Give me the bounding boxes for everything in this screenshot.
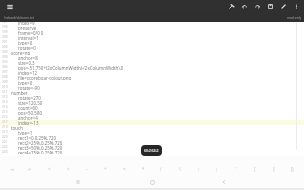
staticText: = xyxy=(123,166,126,172)
staticText: 214 xyxy=(2,105,8,109)
button[interactable]: + xyxy=(98,162,112,176)
staticText: /sdcard/sb/score.txt xyxy=(4,16,34,20)
button[interactable]: Save xyxy=(264,0,277,13)
staticText: 198 xyxy=(2,25,8,29)
staticText: 212 xyxy=(2,95,8,99)
staticText: anchor=4 xyxy=(18,115,38,120)
staticText: touch xyxy=(11,125,23,130)
staticText: type=0 xyxy=(18,80,33,85)
staticText: size=120,50 xyxy=(18,100,43,105)
staticText: * xyxy=(142,166,145,172)
staticText: pos=-51,750+(2xColumnWidth)-(2xColumnWid… xyxy=(18,65,124,70)
staticText: [ xyxy=(254,166,256,172)
staticText: ⇥ xyxy=(10,167,14,172)
staticText: size=0.3 xyxy=(18,60,35,65)
staticText: 218 xyxy=(2,125,8,129)
button[interactable]: () xyxy=(285,162,299,176)
staticText: ' xyxy=(236,166,237,172)
staticText: \ xyxy=(179,166,181,172)
staticText: 207 xyxy=(2,70,8,74)
staticText: 199 xyxy=(2,30,8,34)
button[interactable]: Bookmark xyxy=(225,0,238,13)
staticText: 217 xyxy=(2,120,8,124)
staticText: rotate=0 xyxy=(18,45,36,50)
staticText: 204 xyxy=(2,55,8,59)
staticText: 219 xyxy=(2,130,8,134)
staticText: () xyxy=(291,166,294,172)
staticText: rect2=25%,0,25%,720 xyxy=(18,140,63,145)
staticText: 215 xyxy=(2,110,8,114)
staticText: > xyxy=(67,166,70,172)
button[interactable]: Edit xyxy=(277,0,290,13)
staticText: 201 xyxy=(2,40,8,44)
staticText: - xyxy=(86,166,88,172)
staticText: score=np xyxy=(11,50,31,55)
button[interactable]: Back xyxy=(218,176,230,188)
staticText: 221 xyxy=(2,140,8,144)
staticText: < xyxy=(48,166,51,172)
staticText: : xyxy=(198,166,200,172)
staticText: 223 xyxy=(2,150,8,154)
staticText: count=60 xyxy=(18,105,38,110)
staticText: ; xyxy=(216,166,218,172)
staticText: interval=1 xyxy=(18,35,39,40)
staticText: ] xyxy=(273,166,275,172)
staticText: index=9 xyxy=(18,22,35,25)
button[interactable]: / xyxy=(154,162,168,176)
staticText: preserve xyxy=(18,25,37,30)
staticText: 220 xyxy=(2,135,8,139)
staticText: rotate=270 xyxy=(18,95,41,100)
staticText: 216 xyxy=(2,115,8,119)
staticText: rect3=50%,0,25%,720 xyxy=(18,145,63,150)
button[interactable]: ⇥ xyxy=(5,162,19,176)
staticText: anchor=8 xyxy=(18,55,38,60)
staticText: 60:2 62:2 xyxy=(144,148,159,153)
staticText: rotate=-90 xyxy=(18,85,40,90)
staticText: 202 xyxy=(2,45,8,49)
staticText: index=-13 xyxy=(18,120,39,125)
button[interactable]: [ xyxy=(248,162,262,176)
staticText: 200 xyxy=(2,35,8,39)
staticText: file=scoreboar-colour.png xyxy=(18,75,72,80)
staticText: type=0 xyxy=(18,40,33,45)
staticText: 210 xyxy=(2,85,8,89)
staticText: read-only xyxy=(287,16,302,20)
staticText: 208 xyxy=(2,75,8,79)
staticText: 197 xyxy=(2,22,8,24)
staticText: pos=50,580 xyxy=(18,110,42,115)
staticText: 222 xyxy=(2,145,8,149)
staticText: index=12 xyxy=(18,70,37,75)
button[interactable]: 60:2 62:2 xyxy=(141,145,162,156)
staticText: rect1=0,0,25%,720 xyxy=(18,135,57,140)
staticText: ↵ xyxy=(28,167,32,172)
staticText: type=1 xyxy=(18,130,33,135)
button[interactable]: * xyxy=(136,162,150,176)
button[interactable]: Home xyxy=(146,176,158,188)
staticText: frame=0/0 0 xyxy=(18,30,44,35)
staticText: 203 xyxy=(2,50,8,54)
button[interactable]: = xyxy=(117,162,131,176)
button[interactable]: Redo xyxy=(251,0,264,13)
button[interactable]: Recent apps xyxy=(72,176,84,188)
button[interactable]: ] xyxy=(267,162,281,176)
button[interactable]: ↵ xyxy=(23,162,37,176)
button[interactable]: Undo xyxy=(238,0,251,13)
staticText: + xyxy=(104,166,107,172)
staticText: rect4=75%,0,25%,720 xyxy=(18,150,63,154)
button[interactable]: \ xyxy=(173,162,187,176)
staticText: / xyxy=(160,166,162,172)
staticText: 209 xyxy=(2,80,8,84)
staticText: 211 xyxy=(2,90,8,94)
button[interactable]: < xyxy=(42,162,56,176)
button[interactable]: Menu xyxy=(3,0,16,13)
staticText: 206 xyxy=(2,65,8,69)
staticText: 205 xyxy=(2,60,8,64)
staticText: 213 xyxy=(2,100,8,104)
button[interactable]: > xyxy=(61,162,75,176)
button[interactable]: More options xyxy=(290,0,303,13)
staticText: number xyxy=(11,90,28,95)
